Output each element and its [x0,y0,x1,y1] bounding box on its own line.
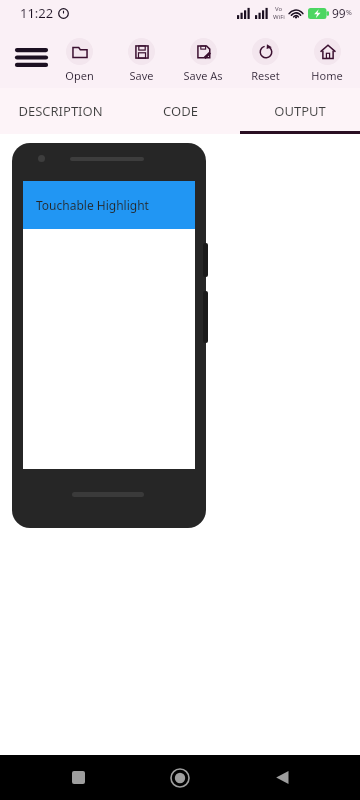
button[interactable]: Home [156,755,204,800]
staticText: 99 [332,5,346,21]
button[interactable]: DESCRIPTION [0,88,120,134]
button[interactable]: Home [296,32,358,83]
staticText: OUTPUT [274,102,326,120]
staticText: 11:22 [20,4,54,22]
staticText: Home [311,68,343,83]
staticText: Reset [251,68,280,83]
button[interactable]: Open [48,32,110,83]
button[interactable]: Back [258,755,306,800]
staticText: DESCRIPTION [18,102,103,120]
button[interactable]: CODE [120,88,240,134]
staticText: WiFi [273,13,285,21]
staticText: Touchable Highlight [36,197,149,213]
staticText: % [346,8,352,18]
button[interactable]: Touchable Highlight [23,181,195,229]
staticText: CODE [163,102,198,120]
button[interactable]: OUTPUT [240,88,360,134]
button[interactable]: Recent apps [54,755,102,800]
button[interactable]: Menu [10,36,52,78]
staticText: Open [65,68,94,83]
button[interactable]: Reset [234,32,296,83]
button[interactable]: Save As [172,32,234,83]
staticText: Save [129,68,154,83]
staticText: Save As [183,68,223,83]
button[interactable]: Save [110,32,172,83]
staticText: Vo [275,5,283,13]
